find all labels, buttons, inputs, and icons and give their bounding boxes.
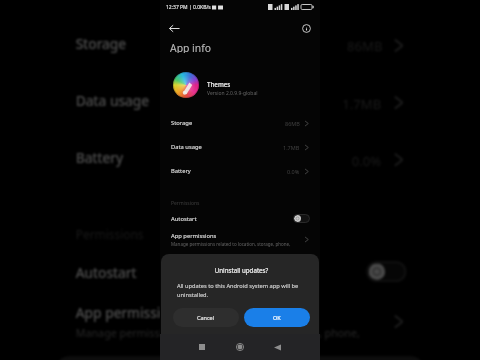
button[interactable]: Data usage xyxy=(160,135,320,159)
button[interactable]: Autostart xyxy=(160,210,320,227)
staticText: Cancel xyxy=(197,314,215,321)
staticText: 86MB xyxy=(347,37,383,54)
staticText: 12:37 PM | 0.0KB/s xyxy=(166,4,211,11)
staticText: Battery xyxy=(171,167,191,175)
button[interactable]: Battery xyxy=(50,130,430,187)
staticText: 1.7MB xyxy=(283,144,300,151)
button[interactable]: Cancel xyxy=(173,308,239,327)
staticText: 0.0% xyxy=(287,168,300,175)
button[interactable]: Storage xyxy=(160,111,320,135)
staticText: App permissions xyxy=(171,232,217,240)
staticText: Data usage xyxy=(76,92,150,111)
staticText: Version 2.0.9.9-global xyxy=(207,90,258,97)
staticText: Uninstall updates? xyxy=(173,266,310,274)
button[interactable]: Recent apps xyxy=(194,339,210,355)
button[interactable]: App permissions xyxy=(50,292,430,351)
staticText: Autostart xyxy=(76,263,138,282)
button[interactable]: Storage xyxy=(50,16,430,73)
staticText: App permissions xyxy=(76,304,185,323)
staticText: Manage permissions related to location, … xyxy=(76,325,361,339)
staticText: Data usage xyxy=(171,143,202,151)
button[interactable]: Autostart xyxy=(50,251,430,292)
staticText: Themes xyxy=(207,80,231,88)
button[interactable]: Back xyxy=(269,339,285,355)
staticText: Battery xyxy=(76,149,123,168)
button[interactable]: Data usage xyxy=(50,73,430,130)
button[interactable]: Home xyxy=(232,339,248,355)
staticText: Manage permissions related to location, … xyxy=(171,241,291,247)
staticText: Permissions xyxy=(76,228,145,244)
button[interactable]: App details xyxy=(298,20,314,36)
staticText: Autostart xyxy=(171,215,197,223)
staticText: OK xyxy=(273,314,281,321)
button[interactable]: App permissions xyxy=(160,227,320,252)
staticText: 1.7MB xyxy=(342,94,383,111)
button[interactable]: OK xyxy=(244,308,310,327)
button[interactable]: Back xyxy=(166,20,182,36)
button[interactable]: Battery xyxy=(160,159,320,183)
staticText: 86MB xyxy=(285,120,300,127)
staticText: Storage xyxy=(76,35,128,54)
staticText: All updates to this Android system app w… xyxy=(177,282,310,299)
staticText: Permissions xyxy=(171,200,200,207)
staticText: Storage xyxy=(171,119,193,127)
staticText: App info xyxy=(170,41,212,53)
staticText: 0.0% xyxy=(352,151,383,168)
